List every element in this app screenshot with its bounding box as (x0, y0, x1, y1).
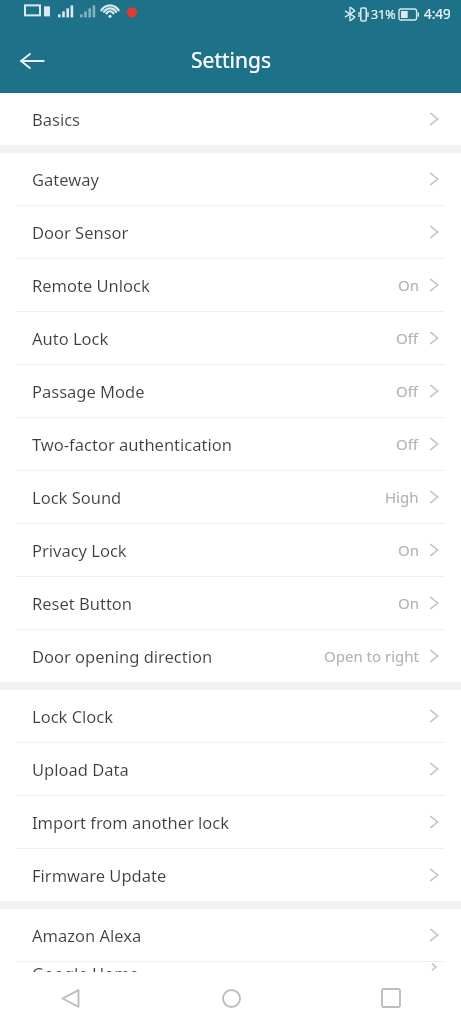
button[interactable]: Lock Clock (0, 690, 461, 743)
staticText: Off (396, 434, 419, 454)
staticText: High (385, 487, 419, 507)
staticText: Lock Clock (32, 705, 114, 727)
button[interactable]: Back (8, 37, 56, 85)
staticText: On (398, 540, 419, 560)
staticText: Remote Unlock (32, 274, 150, 296)
button[interactable]: Amazon Alexa (0, 909, 461, 962)
button[interactable]: Lock Sound (0, 471, 461, 524)
staticText: Passage Mode (32, 380, 145, 402)
staticText: On (398, 593, 419, 613)
button[interactable]: Reset Button (0, 577, 461, 630)
staticText: Upload Data (32, 758, 129, 780)
staticText: Lock Sound (32, 486, 122, 508)
button[interactable]: Google Home (0, 962, 461, 972)
staticText: 4:49 (424, 5, 451, 23)
button[interactable]: Import from another lock (0, 796, 461, 849)
staticText: On (398, 275, 419, 295)
staticText: Two-factor authentication (32, 433, 232, 455)
button[interactable]: Auto Lock (0, 312, 461, 365)
staticText: Reset Button (32, 592, 133, 614)
staticText: Open to right (324, 646, 419, 666)
staticText: Amazon Alexa (32, 924, 142, 946)
staticText: Import from another lock (32, 811, 230, 833)
button[interactable]: Gateway (0, 153, 461, 206)
button[interactable]: Home (207, 974, 255, 1022)
button[interactable]: Recents (367, 974, 415, 1022)
staticText: Settings (191, 46, 271, 75)
staticText: Auto Lock (32, 327, 109, 349)
button[interactable]: Remote Unlock (0, 259, 461, 312)
staticText: Door opening direction (32, 645, 213, 667)
button[interactable]: Door Sensor (0, 206, 461, 259)
button[interactable]: Two-factor authentication (0, 418, 461, 471)
staticText: Basics (32, 108, 80, 130)
button[interactable]: Back (46, 974, 94, 1022)
button[interactable]: Basics (0, 93, 461, 145)
staticText: Privacy Lock (32, 539, 127, 561)
button[interactable]: Privacy Lock (0, 524, 461, 577)
button[interactable]: Door opening direction (0, 630, 461, 682)
staticText: Google Home (32, 962, 139, 972)
button[interactable]: Upload Data (0, 743, 461, 796)
staticText: Firmware Update (32, 864, 167, 886)
staticText: 31% (371, 6, 396, 23)
staticText: Off (396, 328, 419, 348)
staticText: Off (396, 381, 419, 401)
button[interactable]: Firmware Update (0, 849, 461, 901)
button[interactable]: Passage Mode (0, 365, 461, 418)
staticText: Gateway (32, 168, 99, 190)
staticText: Door Sensor (32, 221, 129, 243)
